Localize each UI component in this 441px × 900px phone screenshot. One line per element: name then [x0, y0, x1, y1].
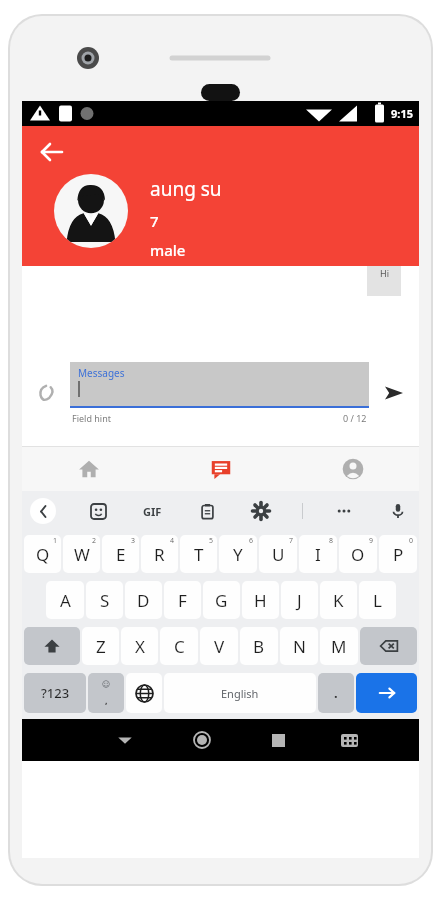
button[interactable]: S — [86, 581, 123, 619]
staticText: ?123 — [41, 684, 70, 702]
staticText: F — [178, 589, 187, 612]
staticText: , — [105, 694, 108, 706]
button[interactable]: O — [339, 535, 377, 573]
button[interactable]: Switch keyboard — [317, 719, 381, 761]
staticText: 0 — [409, 536, 414, 546]
button[interactable] — [24, 627, 80, 665]
button[interactable]: Recents — [240, 719, 317, 761]
button[interactable]: Sticker — [85, 498, 111, 524]
staticText: . — [334, 684, 338, 702]
staticText: ☺ — [102, 680, 111, 689]
button[interactable]: ?123 — [24, 673, 86, 713]
staticText: T — [194, 543, 204, 566]
staticText: 4 — [170, 536, 175, 546]
button[interactable]: E — [102, 535, 139, 573]
staticText: S — [100, 589, 110, 612]
button[interactable]: J — [281, 581, 318, 619]
button[interactable]: More options — [331, 498, 357, 524]
staticText: 2 — [92, 536, 97, 546]
staticText: 0 / 12 — [343, 412, 367, 424]
staticText: P — [393, 543, 404, 566]
button[interactable]: Back — [30, 498, 56, 524]
button[interactable]: B — [240, 627, 278, 665]
button[interactable]: K — [320, 581, 357, 619]
staticText: 6 — [249, 536, 254, 546]
button[interactable]: GIF — [139, 500, 166, 523]
button[interactable]: Attach — [28, 374, 66, 412]
staticText: A — [60, 589, 71, 612]
staticText: C — [174, 635, 185, 658]
button[interactable]: ☺ — [88, 673, 124, 713]
button[interactable]: I — [299, 535, 337, 573]
staticText: L — [373, 589, 382, 612]
button[interactable]: Enter — [356, 673, 417, 713]
button[interactable]: Messages — [155, 446, 287, 491]
staticText: U — [272, 543, 285, 566]
button[interactable]: Clipboard — [194, 498, 220, 524]
button[interactable]: D — [125, 581, 162, 619]
staticText: 9 — [369, 536, 374, 546]
staticText: 9:15 — [391, 106, 413, 121]
button[interactable]: . — [318, 673, 354, 713]
staticText: R — [154, 543, 165, 566]
staticText: 3 — [131, 536, 136, 546]
staticText: J — [297, 589, 302, 612]
staticText: N — [293, 635, 306, 658]
staticText: 5 — [209, 536, 214, 546]
staticText: Field hint — [72, 412, 111, 424]
staticText: M — [331, 635, 347, 658]
button[interactable]: L — [359, 581, 396, 619]
staticText: aung su — [150, 176, 222, 202]
button[interactable]: X — [121, 627, 158, 665]
staticText: Q — [36, 543, 50, 566]
staticText: Hi — [380, 267, 389, 279]
staticText: D — [137, 589, 150, 612]
button[interactable]: W — [63, 535, 100, 573]
staticText: Y — [233, 543, 243, 566]
button[interactable]: T — [180, 535, 217, 573]
button[interactable]: Voice input — [385, 498, 411, 524]
staticText: English — [221, 686, 259, 701]
button[interactable]: C — [160, 627, 198, 665]
staticText: 8 — [329, 536, 334, 546]
button[interactable]: Home — [22, 446, 155, 491]
button[interactable]: Z — [82, 627, 119, 665]
button[interactable]: Home — [163, 719, 240, 761]
button[interactable]: Y — [219, 535, 257, 573]
button[interactable]: Messages — [70, 362, 369, 406]
button[interactable]: H — [242, 581, 279, 619]
staticText: W — [74, 543, 90, 566]
button[interactable]: Send — [375, 374, 413, 412]
button[interactable]: Profile — [287, 446, 419, 491]
button[interactable]: U — [259, 535, 297, 573]
button[interactable]: Hide keyboard — [86, 719, 163, 761]
staticText: H — [254, 589, 267, 612]
staticText: X — [135, 635, 145, 658]
staticText: Z — [96, 635, 106, 658]
button[interactable] — [126, 673, 162, 713]
button[interactable]: F — [164, 581, 201, 619]
button[interactable]: P — [379, 535, 417, 573]
staticText: O — [351, 543, 365, 566]
button[interactable]: Backspace — [360, 627, 417, 665]
staticText: GIF — [143, 504, 162, 519]
staticText: I — [315, 543, 321, 566]
staticText: V — [214, 635, 225, 658]
staticText: 7 — [150, 211, 159, 231]
button[interactable]: Back — [34, 134, 70, 170]
button[interactable]: Q — [24, 535, 61, 573]
button[interactable]: N — [280, 627, 318, 665]
button[interactable]: V — [200, 627, 238, 665]
button[interactable]: English — [164, 673, 316, 713]
staticText: B — [253, 635, 265, 658]
button[interactable]: M — [320, 627, 358, 665]
staticText: Messages — [78, 366, 125, 380]
staticText: male — [150, 240, 186, 260]
button[interactable]: R — [141, 535, 178, 573]
button[interactable]: G — [203, 581, 240, 619]
staticText: 1 — [53, 536, 58, 546]
staticText: G — [215, 589, 228, 612]
button[interactable]: Settings — [248, 498, 274, 524]
staticText: 7 — [289, 536, 294, 546]
button[interactable]: A — [46, 581, 84, 619]
